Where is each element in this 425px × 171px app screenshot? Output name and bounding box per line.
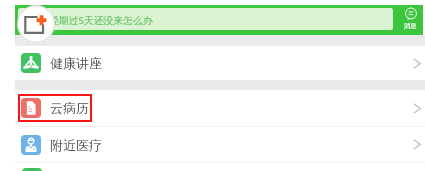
button[interactable]: 健康讲座 (0, 46, 425, 80)
staticText: 云病历 (50, 100, 89, 116)
button[interactable]: 附近医疗 (0, 127, 425, 162)
staticText: 附近医疗 (50, 137, 102, 153)
staticText: 经期过5天还没来怎么办 (49, 14, 153, 27)
button[interactable] (0, 163, 425, 171)
button[interactable]: 经期过5天还没来怎么办 (18, 8, 393, 30)
button[interactable]: 消息 (404, 8, 417, 30)
staticText: 健康讲座 (50, 55, 102, 71)
button[interactable]: 添加 (17, 5, 55, 43)
staticText: 消息 (404, 22, 417, 30)
button[interactable]: 云病历 (0, 90, 425, 126)
